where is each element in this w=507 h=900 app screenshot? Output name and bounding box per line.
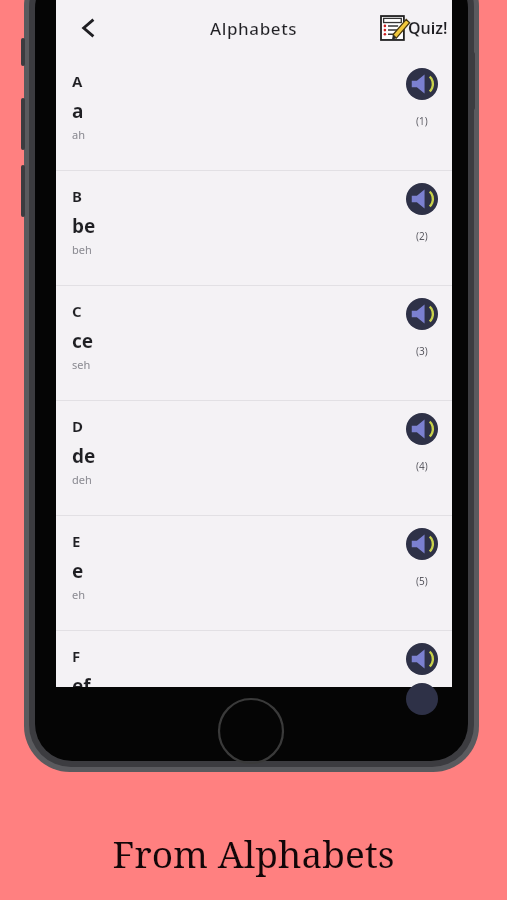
button[interactable]: Play pronunciation of ef xyxy=(406,643,438,675)
staticText: ce xyxy=(72,328,94,354)
staticText: e xyxy=(72,558,84,584)
staticText: deh xyxy=(72,472,92,487)
staticText: be xyxy=(72,213,96,239)
button[interactable]: Play pronunciation of e xyxy=(406,528,438,560)
button[interactable]: Play pronunciation of ce xyxy=(406,298,438,330)
staticText: beh xyxy=(72,242,92,257)
staticText: a xyxy=(72,98,84,124)
button[interactable]: C xyxy=(56,286,452,400)
button[interactable]: Home xyxy=(216,696,286,766)
button[interactable]: Play pronunciation of de xyxy=(406,413,438,445)
staticText: seh xyxy=(72,357,91,372)
staticText: (3) xyxy=(416,344,428,358)
staticText: (5) xyxy=(416,574,428,588)
button[interactable]: Play pronunciation of a xyxy=(406,68,438,100)
staticText: eh xyxy=(72,587,86,602)
staticText: B xyxy=(72,186,82,206)
staticText: (4) xyxy=(416,459,428,473)
staticText: Quiz! xyxy=(408,17,448,39)
staticText: From Alphabets xyxy=(112,828,395,878)
staticText: F xyxy=(72,646,81,666)
button[interactable]: B xyxy=(56,171,452,285)
staticText: ah xyxy=(72,127,85,142)
staticText: de xyxy=(72,443,96,469)
staticText: C xyxy=(72,301,82,321)
staticText: Alphabets xyxy=(210,17,298,40)
staticText: D xyxy=(72,416,83,436)
button[interactable]: Back xyxy=(66,5,112,51)
button[interactable]: Quiz! xyxy=(381,15,448,41)
button[interactable]: D xyxy=(56,401,452,515)
button[interactable]: F xyxy=(56,631,452,687)
button[interactable]: A xyxy=(56,56,452,170)
staticText: (1) xyxy=(416,114,428,128)
staticText: (2) xyxy=(416,229,428,243)
button[interactable]: E xyxy=(56,516,452,630)
button[interactable]: Play pronunciation of be xyxy=(406,183,438,215)
staticText: E xyxy=(72,531,81,551)
staticText: A xyxy=(72,71,83,91)
staticText: ef xyxy=(72,673,91,687)
